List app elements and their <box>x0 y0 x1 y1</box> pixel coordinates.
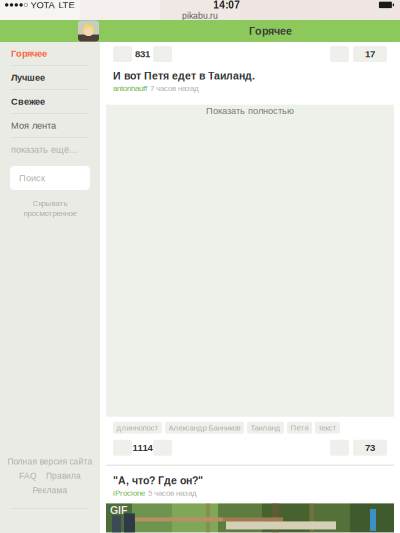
staticText: 5 часов назад <box>148 488 197 497</box>
staticText: FAQ <box>19 471 37 481</box>
button[interactable]: Таиланд <box>247 422 284 434</box>
staticText: 17 <box>365 49 375 59</box>
staticText: Показать полностью <box>206 106 294 116</box>
button[interactable]: "А, что? Где он?" <box>113 475 387 486</box>
staticText: 7 часов назад <box>150 84 199 93</box>
button[interactable]: Показать полностью <box>206 106 294 116</box>
button[interactable]: показать ещё... <box>0 138 100 161</box>
staticText: pikabu.ru <box>182 11 218 21</box>
button[interactable]: Моя лента <box>0 114 100 137</box>
staticText: Горячее <box>249 25 292 37</box>
button[interactable]: текст <box>315 422 340 434</box>
button[interactable]: 17 <box>353 46 387 62</box>
staticText: 1114 <box>132 442 152 453</box>
staticText: Александр Банников <box>168 423 240 432</box>
button[interactable]: длиннопост <box>113 422 162 434</box>
staticText: 73 <box>365 442 375 453</box>
button[interactable]: Скрывать <box>0 199 100 218</box>
staticText: Поиск <box>19 173 45 183</box>
button[interactable]: Горячее <box>0 42 100 65</box>
button[interactable]: 73 <box>353 440 387 456</box>
staticText: Петя <box>290 423 308 432</box>
staticText: Полная версия сайта <box>7 457 92 466</box>
staticText: Таиланд <box>250 423 280 432</box>
button[interactable]: Реклама <box>32 486 67 495</box>
staticText: Правила <box>46 471 81 481</box>
staticText: Горячее <box>11 48 47 59</box>
button[interactable]: Свежее <box>0 90 100 113</box>
staticText: 14:07 <box>213 0 240 10</box>
button[interactable]: Александр Банников <box>165 422 244 434</box>
staticText: И вот Петя едет в Таиланд. <box>113 70 255 82</box>
staticText: 831 <box>135 49 150 59</box>
button[interactable]: Pikabu <box>78 20 99 41</box>
staticText: LTE <box>59 0 75 10</box>
staticText: длиннопост <box>116 423 158 432</box>
button[interactable]: iProcione <box>113 488 145 497</box>
staticText: просмотренное <box>23 209 76 218</box>
staticText: Реклама <box>32 486 67 495</box>
button[interactable]: FAQ <box>19 471 37 481</box>
staticText: iProcione <box>113 488 145 497</box>
staticText: Лучшее <box>11 72 45 83</box>
button[interactable]: Правила <box>46 471 81 481</box>
button[interactable]: Полная версия сайта <box>7 457 92 466</box>
staticText: Свежее <box>11 96 45 107</box>
button[interactable]: Петя <box>287 422 312 434</box>
staticText: YOTA <box>31 0 55 10</box>
staticText: antonhauff <box>113 84 147 93</box>
button[interactable]: antonhauff <box>113 84 147 93</box>
button[interactable]: Лучшее <box>0 66 100 89</box>
button[interactable]: И вот Петя едет в Таиланд. <box>113 70 387 82</box>
staticText: GIF <box>110 504 128 516</box>
staticText: текст <box>318 423 336 432</box>
button[interactable]: Поиск <box>10 166 90 190</box>
staticText: Скрывать <box>32 199 67 208</box>
staticText: "А, что? Где он?" <box>113 475 203 486</box>
staticText: Моя лента <box>11 120 56 131</box>
staticText: показать ещё... <box>11 144 78 155</box>
